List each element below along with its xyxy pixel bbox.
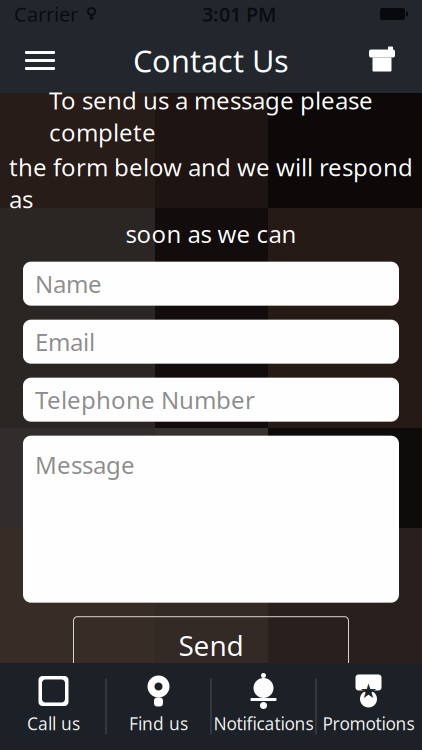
staticText: Message: [35, 449, 135, 481]
button[interactable]: Message: [23, 436, 399, 603]
staticText: Find us: [129, 712, 188, 735]
staticText: Promotions: [322, 712, 414, 735]
staticText: 3:01 PM: [202, 1, 277, 27]
staticText: the form below and we will respond as: [9, 151, 413, 215]
staticText: soon as we can: [125, 218, 296, 250]
staticText: Call us: [27, 712, 80, 735]
button[interactable]: Home: [354, 35, 410, 85]
button[interactable]: Email: [23, 320, 399, 364]
staticText: Contact Us: [133, 40, 289, 81]
button[interactable]: Call us: [1, 663, 105, 750]
staticText: Notifications: [213, 712, 313, 735]
staticText: To send us a message please complete: [49, 84, 373, 148]
button[interactable]: ★: [316, 663, 420, 750]
button[interactable]: Notifications: [211, 663, 315, 750]
staticText: Email: [35, 326, 95, 358]
button[interactable]: Name: [23, 262, 399, 306]
button[interactable]: Find us: [106, 663, 210, 750]
staticText: ★: [359, 680, 377, 702]
staticText: Name: [35, 268, 102, 300]
staticText: Carrier: [14, 1, 78, 27]
staticText: Send: [178, 627, 243, 664]
button[interactable]: Telephone Number: [23, 378, 399, 422]
button[interactable]: Menu: [12, 35, 68, 85]
button[interactable]: Send: [73, 617, 348, 674]
staticText: Telephone Number: [35, 384, 255, 416]
